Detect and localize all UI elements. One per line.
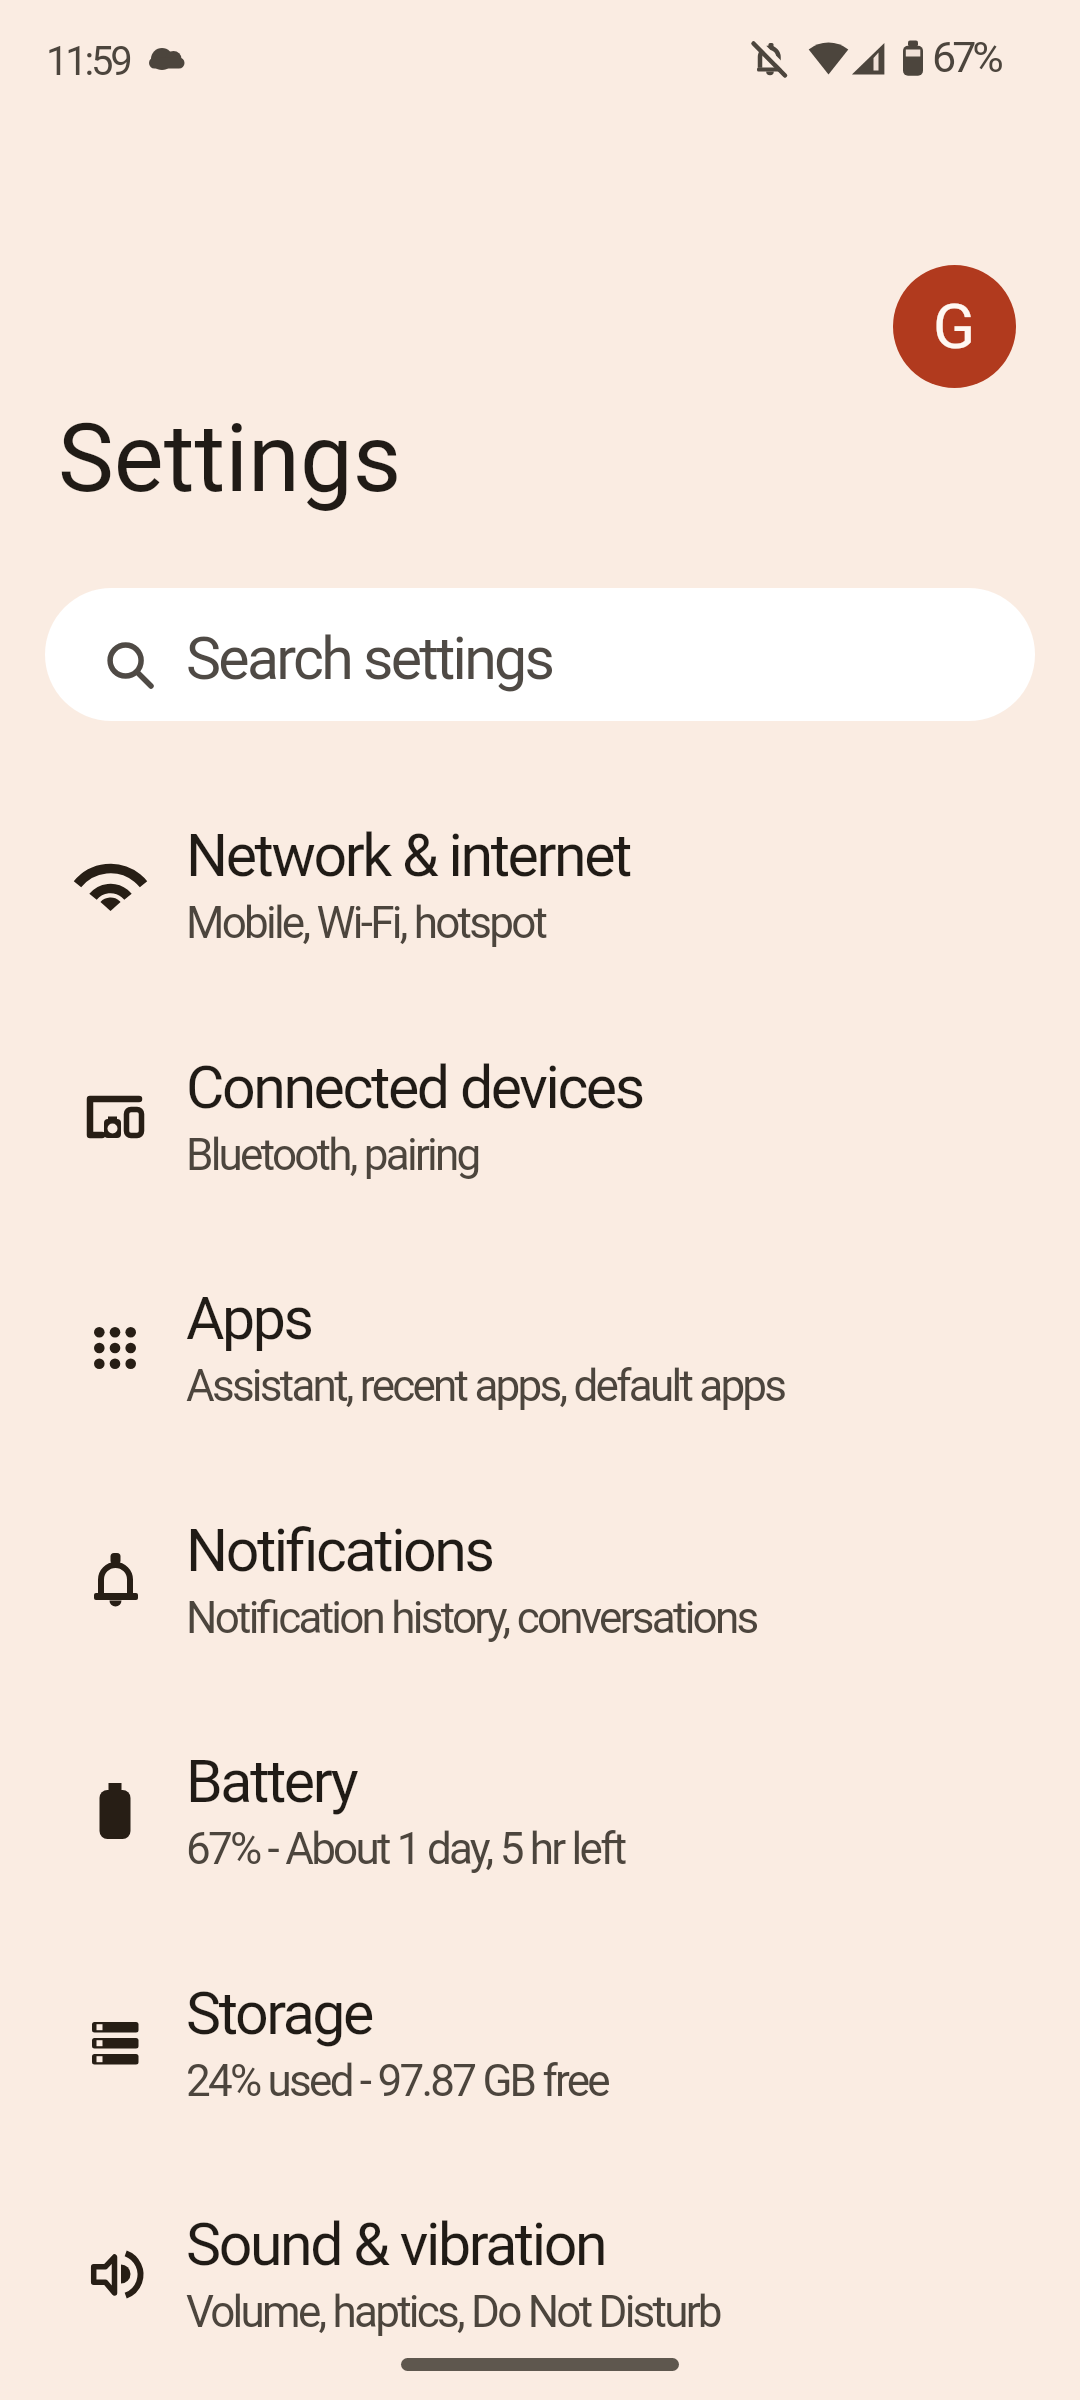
button[interactable]: Apps <box>0 1234 1080 1466</box>
staticText: 67% <box>932 32 1000 82</box>
staticText: Settings <box>58 404 402 514</box>
staticText: Assistant, recent apps, default apps <box>186 1360 785 1412</box>
staticText: Connected devices <box>186 1053 643 1122</box>
button[interactable]: G <box>893 265 1016 388</box>
staticText: Bluetooth, pairing <box>186 1129 479 1181</box>
button[interactable]: Sound & vibration <box>0 2160 1080 2392</box>
staticText: Volume, haptics, Do Not Disturb <box>186 2286 720 2338</box>
staticText: Sound & vibration <box>186 2210 606 2279</box>
staticText: 11:59 <box>46 38 130 85</box>
staticText: Mobile, Wi-Fi, hotspot <box>186 897 546 949</box>
staticText: Apps <box>186 1284 312 1353</box>
staticText: G <box>933 290 976 363</box>
button[interactable]: Network & internet <box>0 771 1080 1003</box>
button[interactable]: Battery <box>0 1697 1080 1929</box>
staticText: 67% - About 1 day, 5 hr left <box>186 1823 625 1875</box>
staticText: 24% used - 97.87 GB free <box>186 2055 608 2107</box>
button[interactable]: Search settings <box>45 588 1035 721</box>
staticText: Notification history, conversations <box>186 1592 757 1644</box>
button[interactable]: Connected devices <box>0 1003 1080 1235</box>
staticText: Search settings <box>186 624 553 693</box>
button[interactable]: Notifications <box>0 1466 1080 1698</box>
button[interactable]: Storage <box>0 1929 1080 2161</box>
staticText: Battery <box>186 1747 357 1816</box>
staticText: Network & internet <box>186 821 631 890</box>
staticText: Storage <box>186 1979 372 2048</box>
staticText: Notifications <box>186 1516 493 1585</box>
